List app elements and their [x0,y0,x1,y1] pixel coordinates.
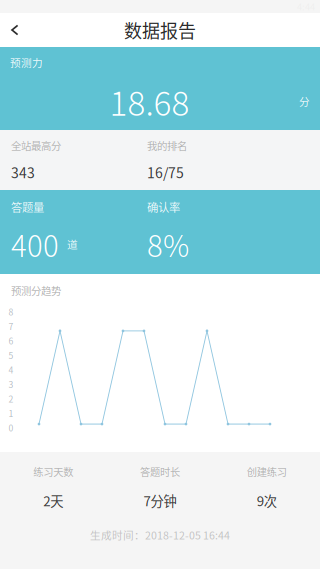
staticText: 分 [299,93,310,109]
staticText: 2 [8,392,13,405]
staticText: 答题时长 [140,464,180,479]
staticText: 练习天数 [33,464,73,479]
staticText: 18.68 [109,77,189,125]
staticText: 预测分趋势 [11,283,61,298]
staticText: 数据报告 [124,17,196,43]
staticText: 2天 [43,491,63,510]
staticText: 7分钟 [143,491,176,510]
staticText: 确认率 [147,199,180,215]
staticText: 7 [8,320,13,332]
staticText: 16/75 [147,162,184,182]
staticText: 5 [8,349,13,361]
staticText: 答题量 [11,199,44,215]
staticText: 4 [8,363,13,376]
button[interactable]: Back [0,13,33,47]
staticText: 创建练习 [247,464,287,479]
staticText: 8% [147,223,189,265]
staticText: 6 [8,334,13,347]
staticText: 我的排名 [147,138,187,153]
staticText: 0 [8,421,13,434]
staticText: 8 [8,305,13,318]
staticText: 3 [8,378,13,390]
staticText: 400 [11,223,59,265]
staticText: 预测力 [10,55,43,70]
staticText: 9次 [257,491,277,510]
staticText: 1 [8,407,13,419]
staticText: 全站最高分 [11,138,61,153]
staticText: 道 [67,236,78,252]
staticText: 生成时间：2018-12-05 16:44 [90,527,230,543]
staticText: 343 [11,162,35,182]
